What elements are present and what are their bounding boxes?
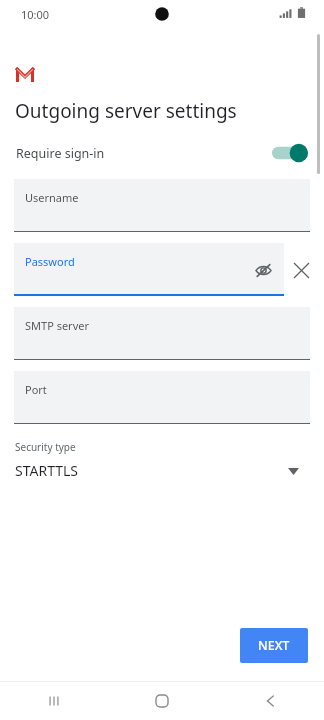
button[interactable]: Security type [0,438,324,486]
staticText: Outgoing server settings [15,98,237,124]
staticText: Username [25,190,79,205]
staticText: Security type [15,440,76,454]
staticText: 10:00 [21,7,50,22]
button[interactable]: NEXT [240,628,308,663]
staticText: Require sign-in [16,145,105,162]
staticText: NEXT [258,637,290,654]
button[interactable]: Show password [250,257,276,283]
button[interactable]: Port [14,371,310,424]
button[interactable]: Clear [284,253,318,287]
button[interactable]: Recents [0,682,108,720]
button[interactable]: SMTP server [14,307,310,360]
staticText: Password [25,254,75,269]
staticText: SMTP server [25,318,89,333]
button[interactable]: Password [14,243,284,296]
button[interactable]: Back [216,682,324,720]
button[interactable]: Home [108,682,216,720]
button[interactable]: Require sign-in [0,139,324,167]
staticText: STARTTLS [15,461,79,480]
button[interactable]: Username [14,179,310,232]
staticText: Port [25,382,47,397]
